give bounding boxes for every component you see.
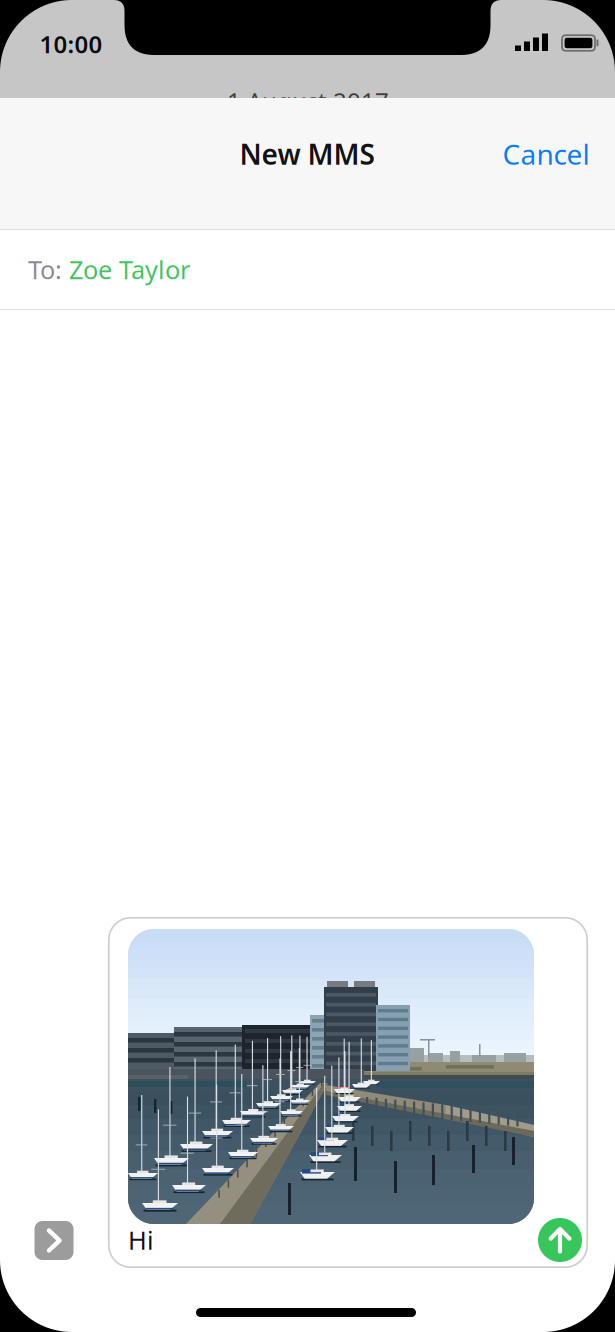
button[interactable]: Photo attachment — [128, 929, 534, 1224]
button[interactable]: To: — [0, 230, 615, 309]
staticText: 1 August 2017 — [227, 85, 389, 117]
staticText: 10:00 — [39, 28, 102, 60]
button[interactable]: Cancel — [486, 124, 606, 184]
staticText: New MMS — [239, 135, 374, 173]
staticText: To: — [28, 253, 69, 286]
staticText: Cancel — [502, 135, 589, 173]
button[interactable]: Send — [538, 1218, 582, 1262]
staticText: Hi — [128, 1223, 154, 1257]
button[interactable]: Expand — [34, 1221, 73, 1260]
staticText: Zoe Taylor — [69, 253, 190, 286]
